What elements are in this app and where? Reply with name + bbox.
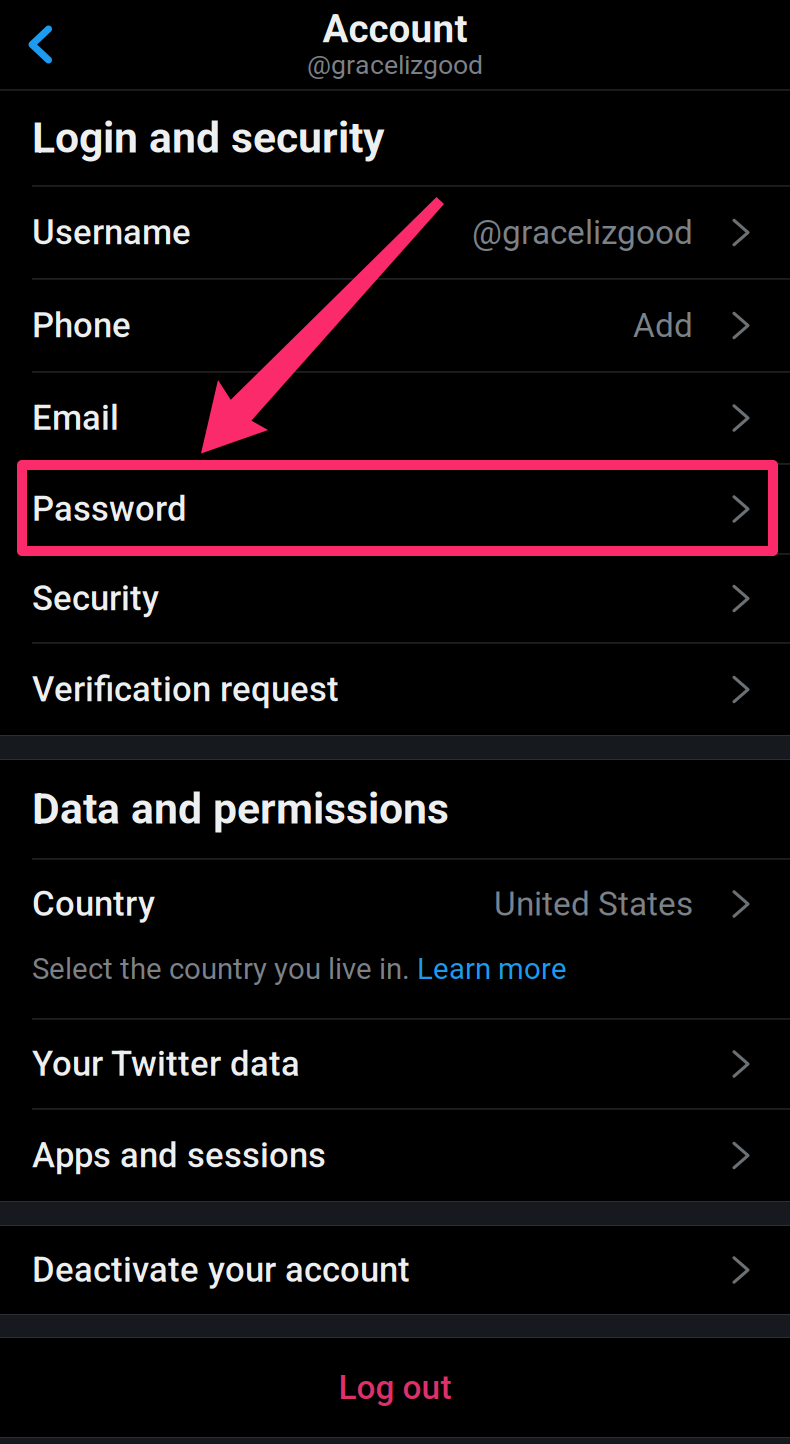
staticText: Apps and sessions: [32, 1135, 326, 1176]
staticText: Email: [32, 398, 119, 438]
staticText: Login and security: [32, 113, 384, 163]
button[interactable]: Country: [0, 860, 790, 948]
button[interactable]: Security: [0, 555, 790, 642]
staticText: Username: [32, 212, 191, 253]
staticText: Add: [633, 306, 693, 345]
staticText: Your Twitter data: [32, 1044, 300, 1084]
staticText: Country: [32, 884, 155, 924]
staticText: Phone: [32, 305, 131, 346]
staticText: Security: [32, 578, 159, 619]
staticText: Data and permissions: [32, 784, 449, 834]
staticText: Learn more: [417, 952, 567, 986]
button[interactable]: Deactivate your account: [0, 1226, 790, 1314]
button[interactable]: Back: [0, 0, 81, 89]
button[interactable]: Log out: [0, 1338, 790, 1437]
staticText: United States: [494, 884, 693, 924]
staticText: @gracelizgood: [472, 213, 693, 252]
button[interactable]: Password: [0, 465, 790, 553]
staticText: Select the country you live in.: [32, 952, 417, 986]
button[interactable]: Apps and sessions: [0, 1110, 790, 1201]
staticText: Password: [32, 489, 187, 529]
staticText: Verification request: [32, 669, 339, 710]
staticText: Log out: [338, 1368, 451, 1407]
button[interactable]: Username: [0, 187, 790, 278]
button[interactable]: Your Twitter data: [0, 1020, 790, 1108]
button[interactable]: Email: [0, 373, 790, 463]
button[interactable]: Learn more: [417, 952, 567, 986]
staticText: Account: [322, 6, 467, 52]
staticText: Deactivate your account: [32, 1250, 410, 1290]
button[interactable]: Verification request: [0, 644, 790, 735]
staticText: @gracelizgood: [307, 49, 483, 81]
button[interactable]: Phone: [0, 280, 790, 371]
